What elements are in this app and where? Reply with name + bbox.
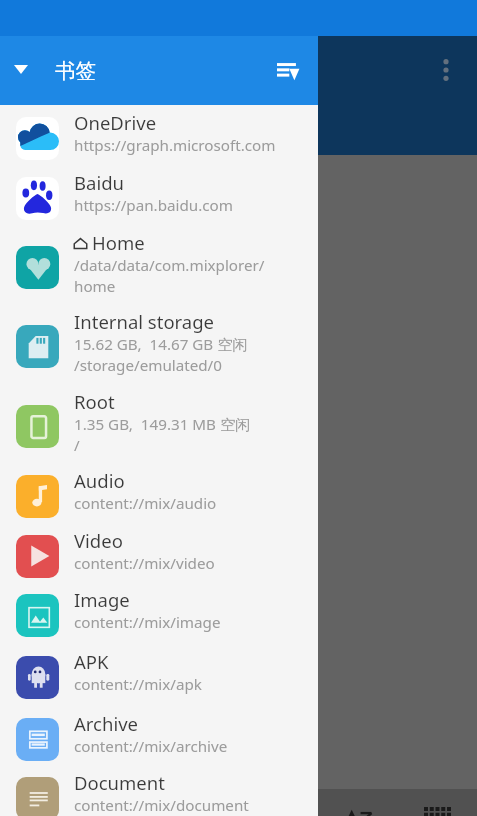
staticText: content://mix/audio (74, 493, 217, 514)
staticText: Internal storage (74, 309, 215, 334)
staticText: Root (74, 389, 115, 414)
staticText: Image (74, 587, 130, 612)
staticText: home (74, 276, 116, 297)
staticText: /data/data/com.mixplorer/ (74, 255, 265, 276)
staticText: Archive (74, 711, 139, 736)
staticText: content://mix/video (74, 553, 215, 574)
staticText: 1.35 GB, 149.31 MB 空闲 (74, 414, 251, 435)
button[interactable]: Baidu (0, 166, 318, 226)
staticText: content://mix/image (74, 612, 221, 633)
button[interactable]: Video (0, 524, 318, 584)
staticText: APK (74, 649, 109, 674)
button[interactable]: OneDrive (0, 106, 318, 166)
staticText: / (74, 435, 80, 456)
button[interactable]: Grid view (418, 789, 454, 816)
button[interactable]: Sort A-Z (340, 789, 376, 816)
staticText: Home (92, 230, 145, 255)
button[interactable]: APK (0, 645, 318, 705)
button[interactable]: 书签 (0, 36, 318, 105)
staticText: 书签 (55, 58, 96, 84)
button[interactable]: Internal storage (0, 305, 318, 384)
staticText: 15.62 GB, 14.67 GB 空闲 (74, 334, 248, 355)
staticText: https://pan.baidu.com (74, 195, 233, 216)
button[interactable]: Sort bookmarks (264, 47, 312, 95)
button[interactable]: Document (0, 766, 318, 816)
staticText: /storage/emulated/0 (74, 355, 222, 376)
staticText: Document (74, 770, 165, 795)
staticText: Video (74, 528, 123, 553)
staticText: OneDrive (74, 110, 157, 135)
staticText: Audio (74, 468, 125, 493)
staticText: content://mix/document (74, 795, 249, 816)
button[interactable]: Audio (0, 464, 318, 524)
button[interactable]: Archive (0, 707, 318, 767)
staticText: https://graph.microsoft.com (74, 135, 276, 156)
button[interactable]: More options (428, 52, 464, 88)
button[interactable]: Home (0, 226, 318, 305)
staticText: content://mix/apk (74, 674, 202, 695)
staticText: content://mix/archive (74, 736, 228, 757)
button[interactable]: Image (0, 583, 318, 643)
staticText: Baidu (74, 170, 124, 195)
button[interactable]: Root (0, 385, 318, 464)
